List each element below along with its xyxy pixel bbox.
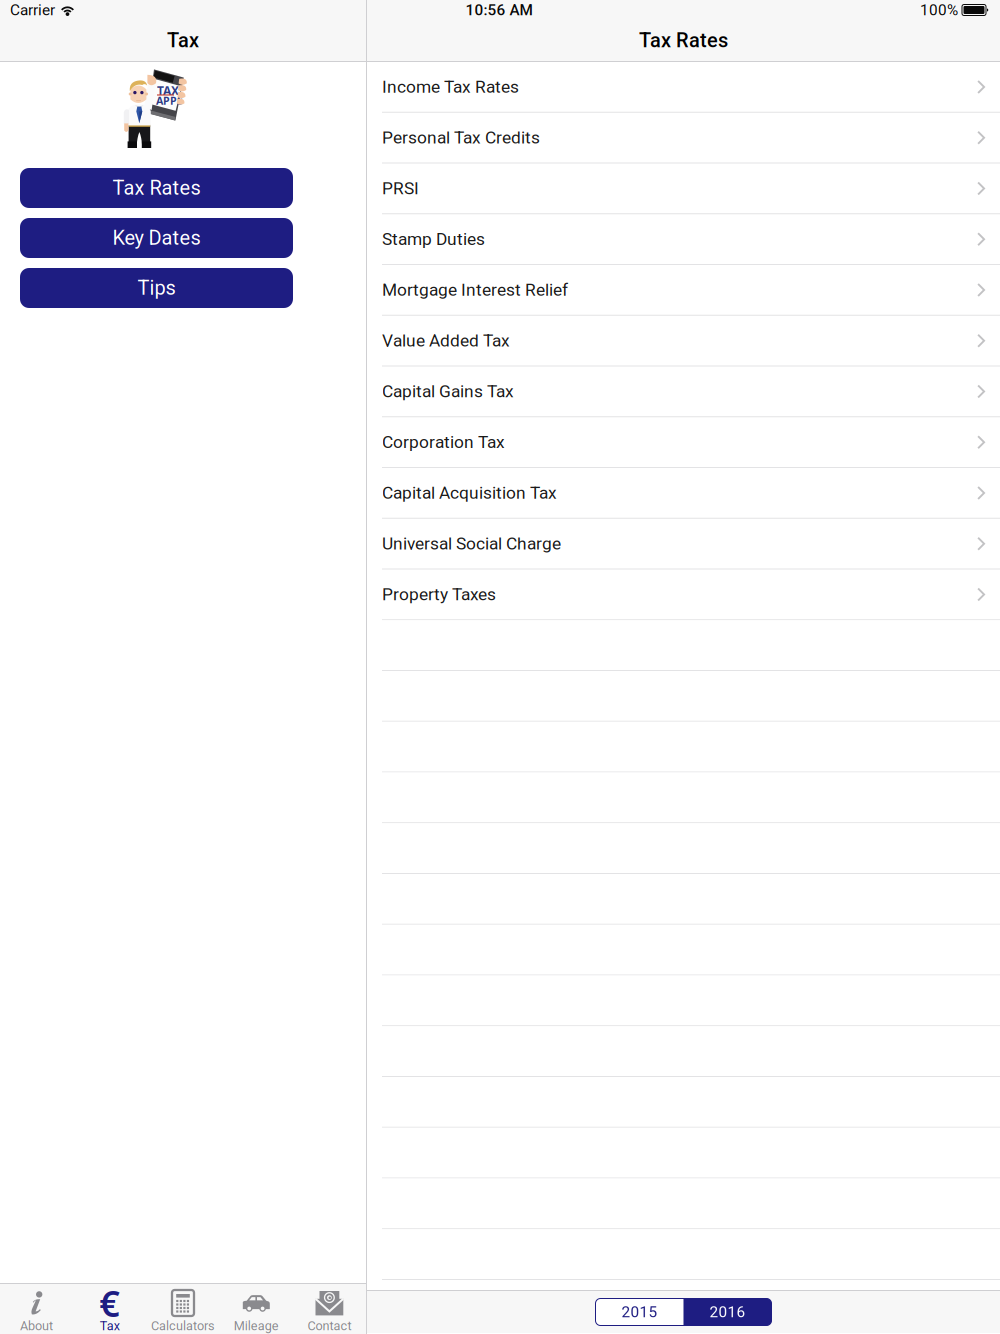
button[interactable]: Tax Rates [20,168,293,208]
staticText: Tax Rates [639,29,728,52]
button[interactable]: Capital Acquisition Tax [382,468,1000,519]
staticText: Mileage [234,1319,279,1333]
staticText: About [20,1319,53,1333]
staticText: 2015 [621,1303,657,1321]
staticText: Key Dates [112,226,200,250]
button[interactable]: Calculators [146,1284,220,1334]
button[interactable]: Stamp Duties [382,214,1000,265]
staticText: Corporation Tax [382,432,505,452]
staticText: 2016 [709,1303,745,1321]
staticText: Tax [167,29,199,52]
staticText: TAX [157,82,179,98]
staticText: PRSI [382,178,419,198]
button[interactable]: PRSI [382,163,1000,214]
button[interactable]: € [73,1284,146,1334]
button[interactable]: Income Tax Rates [382,62,1000,113]
button[interactable]: 2016 [683,1298,771,1325]
staticText: Mortgage Interest Relief [382,280,568,300]
staticText: Tax [100,1319,120,1333]
staticText: Calculators [151,1319,215,1333]
button[interactable]: Personal Tax Credits [382,113,1000,164]
staticText: APPS [156,93,183,108]
staticText: Tips [137,276,175,300]
button[interactable]: Corporation Tax [382,417,1000,468]
staticText: Capital Acquisition Tax [382,483,557,503]
staticText: Property Taxes [382,584,496,604]
staticText: Carrier [10,1,55,19]
staticText: Capital Gains Tax [382,381,514,401]
button[interactable]: Property Taxes [382,569,1000,620]
staticText: Value Added Tax [382,330,510,351]
button[interactable]: About [0,1284,73,1334]
button[interactable]: 2015 [595,1298,683,1325]
staticText: Tax Rates [112,176,200,200]
staticText: Stamp Duties [382,229,485,249]
button[interactable]: Key Dates [20,218,293,258]
staticText: Universal Social Charge [382,533,561,554]
staticText: 10:56 AM [465,1,532,19]
staticText: 100% [920,1,958,19]
staticText: Contact [307,1319,351,1333]
staticText: € [99,1279,120,1327]
staticText: Income Tax Rates [382,77,519,97]
button[interactable]: Mortgage Interest Relief [382,265,1000,316]
button[interactable]: Capital Gains Tax [382,366,1000,417]
button[interactable]: Universal Social Charge [382,519,1000,570]
button[interactable]: Tips [20,268,293,308]
button[interactable]: Value Added Tax [382,316,1000,367]
staticText: Personal Tax Credits [382,127,540,148]
button[interactable]: Mileage [220,1284,293,1334]
button[interactable]: Contact [293,1284,366,1334]
